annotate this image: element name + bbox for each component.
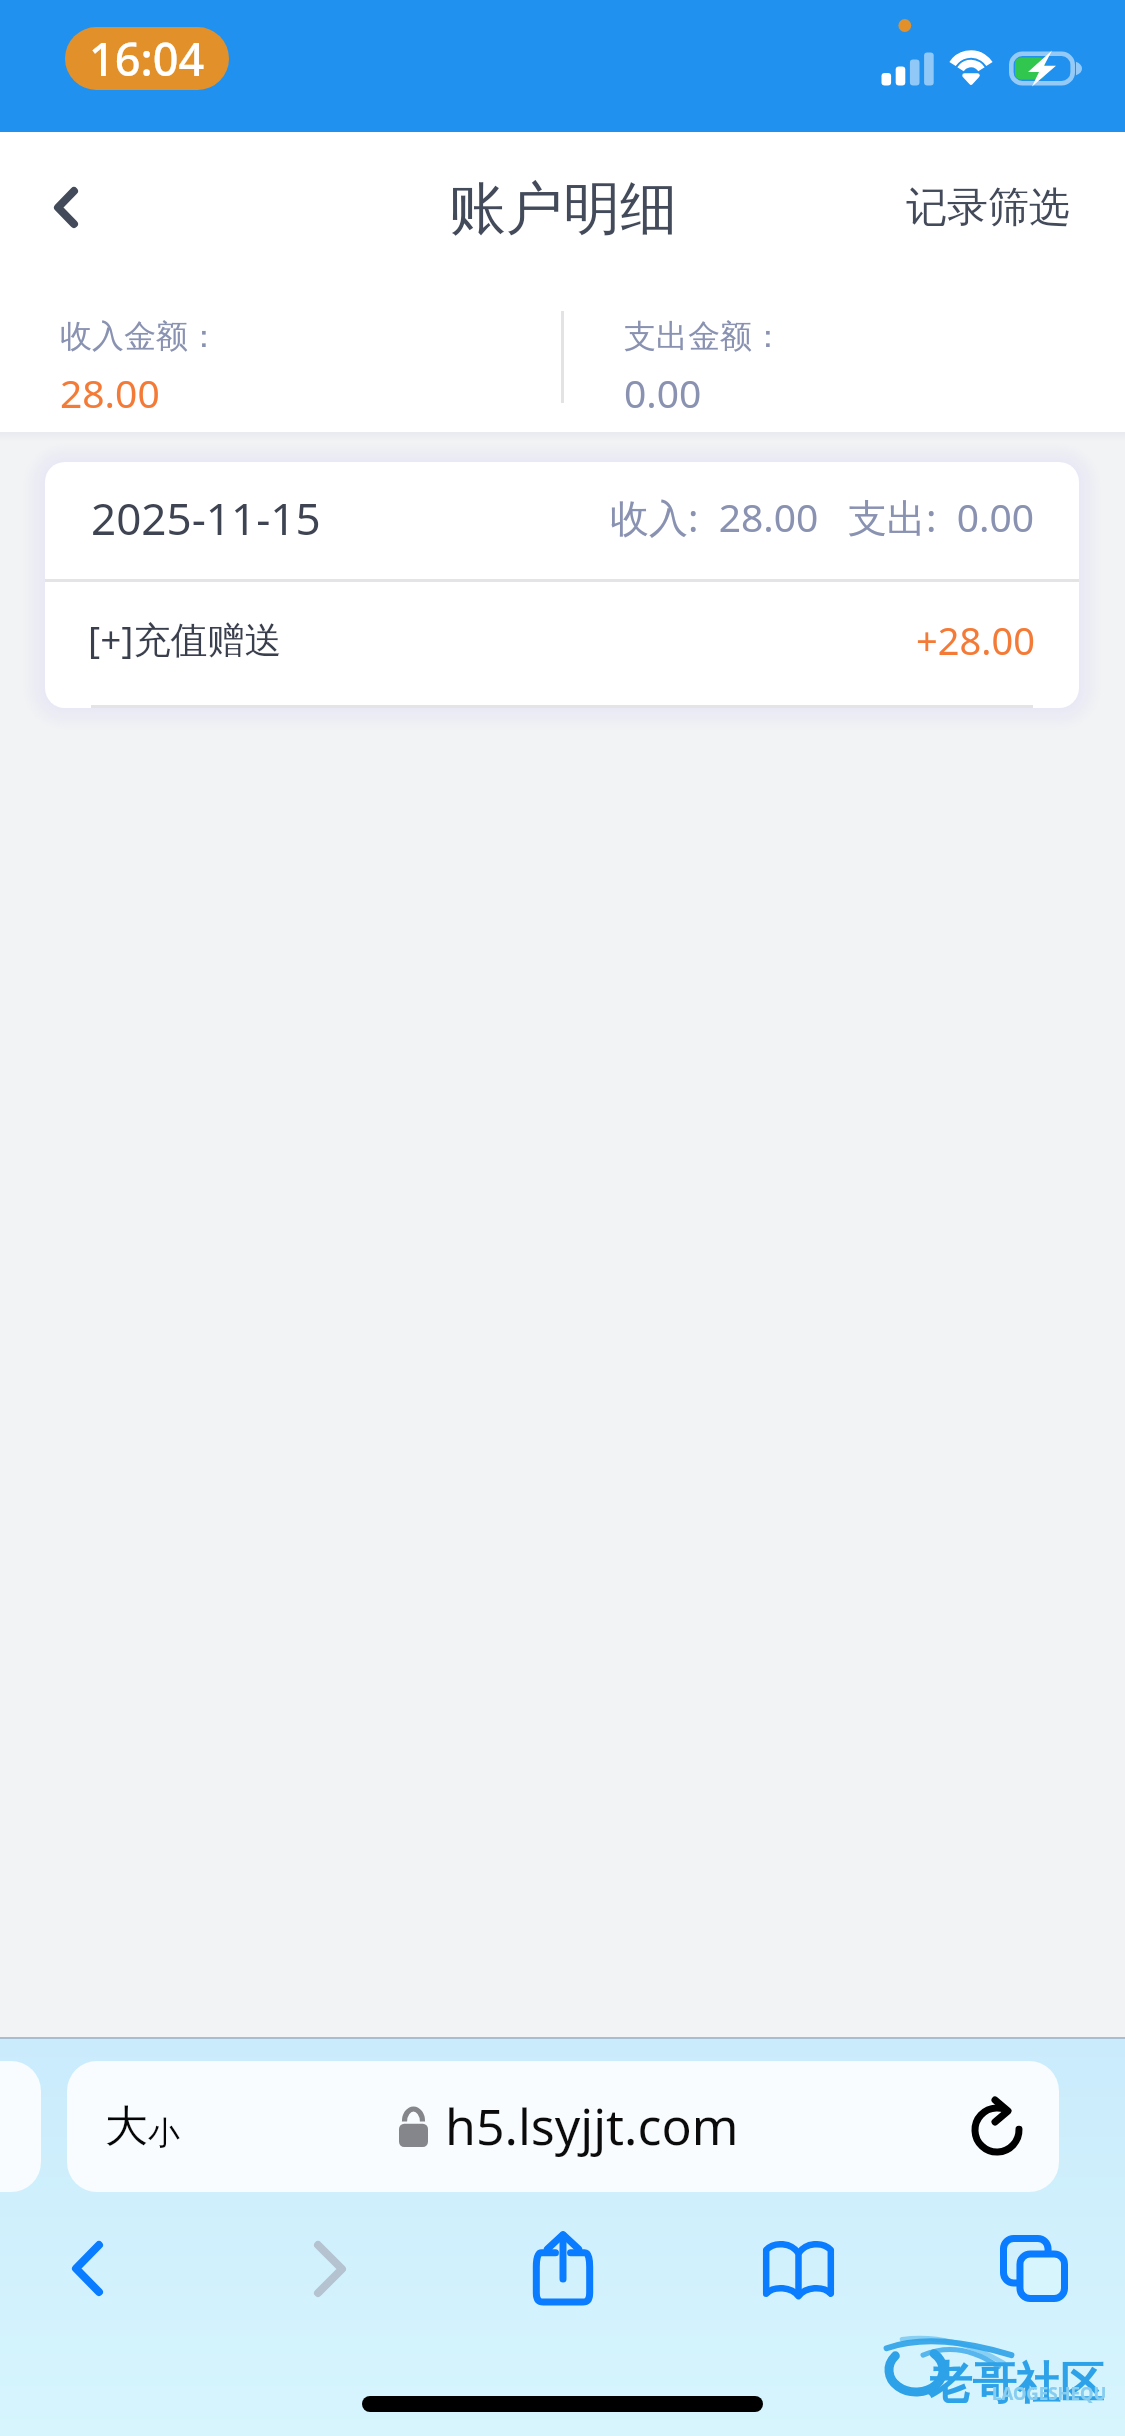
button[interactable]: Back <box>15 2192 159 2345</box>
staticText: 支出: 0.00 <box>848 490 1035 543</box>
button[interactable]: 16:04 <box>65 27 229 90</box>
staticText: 16:04 <box>89 28 205 89</box>
staticText: LAOGESHEQU <box>992 2382 1107 2405</box>
button[interactable]: Tabs <box>962 2192 1106 2345</box>
staticText: 大 <box>105 2100 148 2154</box>
staticText: [+]充值赠送 <box>88 613 282 664</box>
button[interactable]: 大 <box>67 2061 1059 2192</box>
staticText: 小 <box>148 2113 180 2153</box>
staticText: 支出金额： <box>624 316 784 356</box>
button[interactable]: 记录筛选 <box>854 148 1122 268</box>
staticText: 28.00 <box>60 366 160 419</box>
button[interactable]: 2025-11-15 <box>45 462 1079 579</box>
button[interactable]: Reload <box>959 2084 1039 2164</box>
staticText: 收入: 28.00 <box>610 490 819 543</box>
staticText: 0.00 <box>624 366 702 419</box>
button[interactable]: Bookmarks <box>726 2192 870 2345</box>
staticText: 记录筛选 <box>906 182 1070 234</box>
staticText: +28.00 <box>916 614 1035 666</box>
button[interactable]: Back <box>4 152 128 262</box>
button[interactable]: Share <box>491 2192 635 2345</box>
staticText: 老哥社区 <box>928 2356 1104 2411</box>
staticText: 账户明细 <box>449 173 677 245</box>
staticText: 收入金额： <box>60 316 220 356</box>
button[interactable]: Forward <box>258 2192 402 2345</box>
staticText: h5.lsyjjt.com <box>445 2092 739 2160</box>
staticText: 2025-11-15 <box>91 488 321 548</box>
button[interactable]: [+]充值赠送 <box>45 582 1079 705</box>
